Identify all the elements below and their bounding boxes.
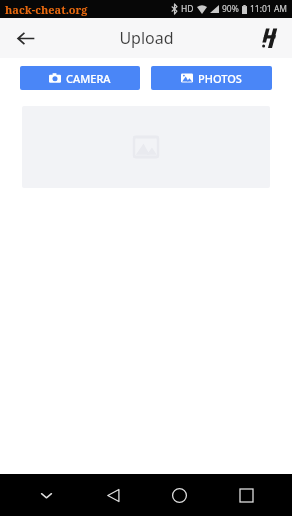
- button[interactable]: Hide keyboard: [25, 474, 67, 516]
- button[interactable]: Back: [92, 474, 134, 516]
- staticText: 11:01 AM: [250, 3, 288, 15]
- button[interactable]: Recent apps: [225, 474, 267, 516]
- button[interactable]: Home: [158, 474, 200, 516]
- button[interactable]: CAMERA: [20, 66, 140, 90]
- staticText: CAMERA: [66, 71, 111, 86]
- staticText: PHOTOS: [198, 71, 242, 86]
- staticText: hack-cheat.org: [5, 2, 88, 17]
- staticText: HD: [181, 3, 194, 15]
- button[interactable]: Back: [8, 21, 42, 55]
- staticText: 90%: [222, 3, 239, 15]
- staticText: Upload: [119, 27, 174, 49]
- button[interactable]: App logo: [254, 22, 286, 54]
- button[interactable]: PHOTOS: [151, 66, 272, 90]
